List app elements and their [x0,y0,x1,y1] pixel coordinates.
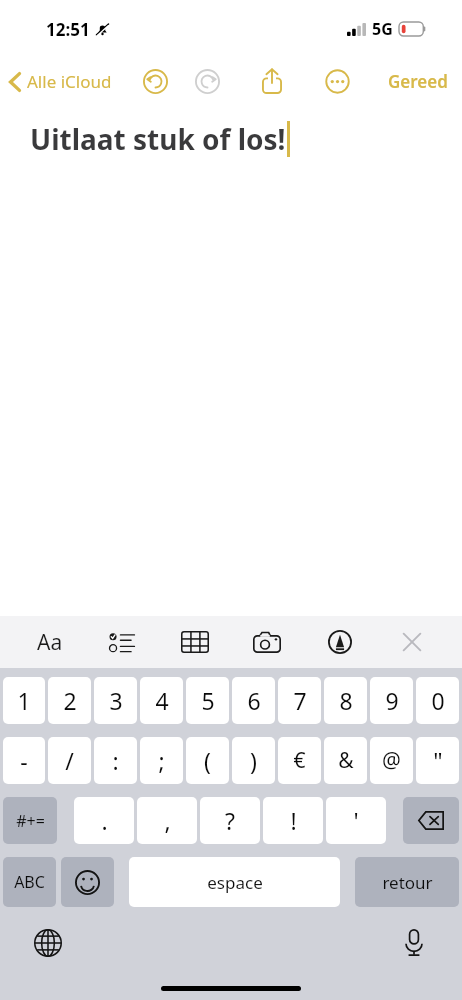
staticText: retour [382,871,433,894]
button[interactable]: 2 [48,677,91,724]
button[interactable]: ( [186,737,229,784]
button[interactable]: Checklist [102,622,142,662]
button[interactable]: Dictation [394,923,434,963]
button[interactable]: 9 [370,677,413,724]
button[interactable]: espace [129,857,340,907]
button[interactable]: Alle iCloud [0,66,116,97]
button[interactable]: Emoji [61,857,114,907]
button[interactable]: . [74,797,134,844]
staticText: 1 [17,685,31,716]
button[interactable]: More [320,64,354,98]
button[interactable]: 6 [232,677,275,724]
button[interactable]: 5 [186,677,229,724]
button[interactable]: ; [140,737,183,784]
button[interactable]: 7 [278,677,321,724]
button[interactable]: € [278,737,321,784]
button[interactable]: 3 [94,677,137,724]
button[interactable]: / [48,737,91,784]
staticText: Gereed [388,70,448,93]
staticText: 8 [339,685,353,716]
staticText: ; [158,745,165,776]
staticText: : [112,745,119,776]
button[interactable]: Markup [320,622,360,662]
staticText: 5G [372,18,393,40]
staticText: espace [207,871,263,894]
button[interactable]: ABC [3,857,56,907]
button[interactable]: 4 [140,677,183,724]
staticText: ' [353,805,359,836]
staticText: ) [250,745,257,776]
staticText: 0 [431,685,445,716]
staticText: 3 [109,685,123,716]
staticText: 12:51 [46,18,90,41]
button[interactable]: ! [263,797,323,844]
button[interactable]: Text format [30,622,70,662]
button[interactable]: 8 [324,677,367,724]
staticText: ( [204,745,211,776]
button[interactable]: Close keyboard [392,622,432,662]
button[interactable]: 0 [416,677,459,724]
button[interactable]: Backspace [403,797,459,844]
button[interactable]: & [324,737,367,784]
staticText: #+= [16,810,45,832]
staticText: ! [290,805,297,836]
staticText: 6 [247,685,261,716]
staticText: 9 [385,685,399,716]
staticText: 2 [63,685,77,716]
staticText: & [338,746,354,775]
button[interactable]: " [416,737,459,784]
button[interactable]: retour [355,857,459,907]
staticText: , [164,805,171,836]
button[interactable]: - [3,737,45,784]
staticText: Alle iCloud [27,70,112,93]
button[interactable]: Camera [247,622,287,662]
button[interactable]: Change keyboard language [28,923,68,963]
staticText: 5 [201,685,215,716]
staticText: . [101,805,108,836]
button[interactable]: Gereed [374,64,462,99]
staticText: - [20,745,28,776]
button[interactable]: Undo [138,64,172,98]
button[interactable]: Table [175,622,215,662]
button[interactable]: ' [326,797,386,844]
staticText: Uitlaat stuk of los! [30,120,286,158]
button[interactable]: ) [232,737,275,784]
button[interactable]: Share [254,63,290,99]
staticText: ? [225,805,235,836]
staticText: € [293,746,306,775]
staticText: @ [382,746,401,775]
staticText: ABC [14,871,45,893]
staticText: 4 [155,685,169,716]
button[interactable]: ? [200,797,260,844]
button[interactable]: @ [370,737,413,784]
staticText: Aa [37,628,63,657]
button[interactable]: : [94,737,137,784]
staticText: 7 [293,685,307,716]
button[interactable]: 1 [3,677,45,724]
staticText: / [65,745,74,776]
button[interactable]: , [137,797,197,844]
staticText: " [433,745,443,776]
button[interactable]: Redo [190,64,224,98]
button[interactable]: #+= [3,797,57,844]
